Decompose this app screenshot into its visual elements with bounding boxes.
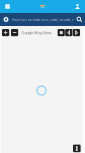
button[interactable]: Zoom out xyxy=(11,29,18,36)
button[interactable]: Map type xyxy=(58,29,65,36)
button[interactable]: Zoom in xyxy=(2,29,9,36)
button[interactable]: Previous xyxy=(65,29,72,36)
button[interactable]: Account xyxy=(71,0,84,13)
button[interactable]: Search xyxy=(74,13,85,26)
staticText: Google Map View xyxy=(21,30,51,35)
button[interactable]: Menu xyxy=(1,0,14,13)
button[interactable]: Next xyxy=(73,29,80,36)
staticText: Inserisci un indirizzo, città, strada, c xyxy=(12,17,74,22)
button[interactable]: Use my location xyxy=(0,13,12,26)
button[interactable]: Address field xyxy=(12,13,74,26)
button[interactable]: Street View xyxy=(73,145,81,152)
